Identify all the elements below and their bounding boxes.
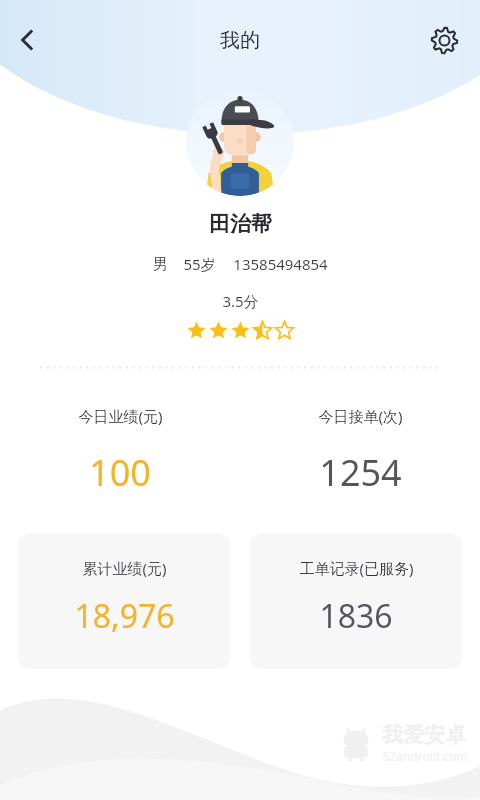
button[interactable]: Back [2,15,52,65]
staticText: 田治帮 [209,211,272,237]
staticText: 今日接单(次) [318,406,403,426]
staticText: 工单记录(已服务) [299,558,414,578]
staticText: 1254 [319,448,402,497]
button[interactable]: 工单记录(已服务) [250,533,462,669]
staticText: 今日业绩(元) [78,406,163,426]
button[interactable]: 今日业绩(元) [0,406,240,497]
staticText: 我的 [220,28,260,53]
staticText: 我爱安卓 [382,722,466,748]
staticText: 52android.com [382,748,468,764]
staticText: 18,976 [74,594,175,638]
staticText: 13585494854 [233,254,328,274]
staticText: 3.5分 [222,291,259,311]
button[interactable]: 今日接单(次) [240,406,480,497]
button[interactable]: Settings [421,17,467,63]
button[interactable]: Profile photo [186,88,294,196]
staticText: 累计业绩(元) [82,558,167,578]
button[interactable]: 累计业绩(元) [18,533,230,669]
staticText: 100 [89,448,151,497]
staticText: 男 [153,255,168,274]
staticText: 55岁 [183,254,216,274]
staticText: 1836 [319,594,393,638]
